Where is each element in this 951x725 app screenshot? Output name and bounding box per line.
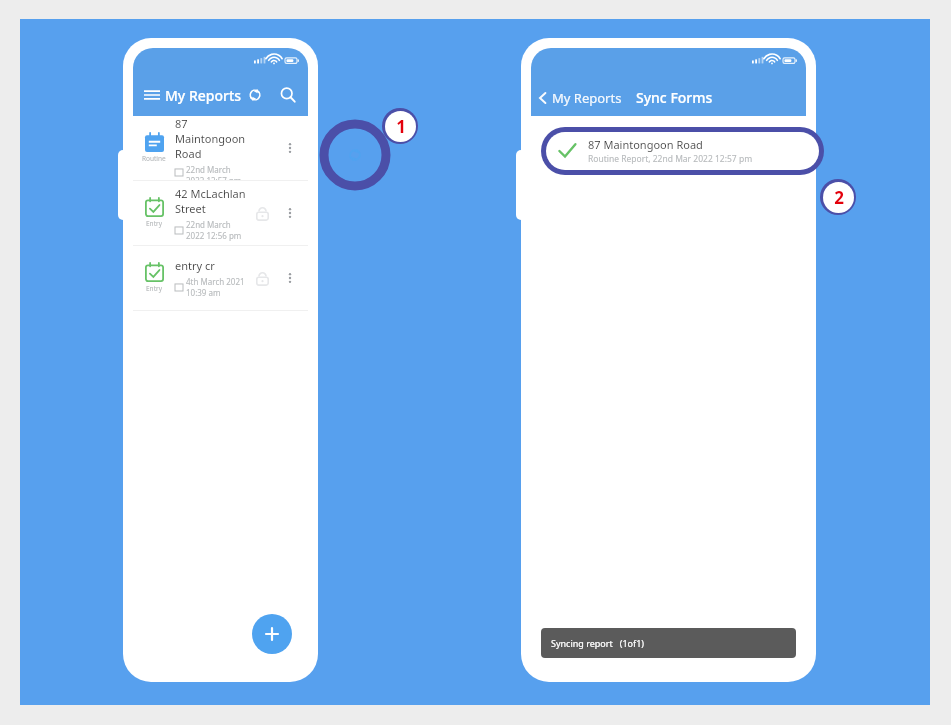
staticText: Sync Forms bbox=[636, 88, 713, 107]
button[interactable]: Locked bbox=[250, 266, 274, 290]
staticText: Routine Report, 22nd Mar 2022 12:57 pm bbox=[588, 153, 753, 165]
staticText: Entry bbox=[146, 219, 162, 228]
staticText: 22nd March 2022 12:56 pm bbox=[186, 219, 250, 241]
button[interactable]: Routine bbox=[133, 116, 308, 180]
button[interactable]: Entry bbox=[133, 181, 308, 245]
button[interactable]: 87 Maintongoon Road bbox=[531, 116, 806, 162]
staticText: 87 Maintongoon Road bbox=[588, 137, 703, 152]
staticText: 42 McLachlan Street bbox=[175, 186, 250, 216]
staticText: My Reports bbox=[552, 89, 622, 107]
button[interactable]: Entry bbox=[133, 246, 308, 310]
button[interactable]: 87 Maintongoon Road bbox=[546, 132, 819, 170]
button[interactable]: Locked bbox=[250, 201, 274, 225]
staticText: My Reports bbox=[165, 86, 242, 105]
button[interactable]: Sync bbox=[242, 82, 268, 108]
button[interactable]: Menu bbox=[139, 82, 165, 108]
staticText: entry cr bbox=[175, 258, 215, 273]
button[interactable]: Add report bbox=[252, 614, 292, 654]
button[interactable]: My Reports bbox=[537, 89, 622, 107]
staticText: Routine Report, 22nd Mar 2022 12:57 pm bbox=[577, 141, 742, 153]
staticText: 2 bbox=[834, 186, 844, 209]
button[interactable]: More options bbox=[280, 203, 300, 223]
staticText: Syncing report (1of1) bbox=[551, 637, 644, 649]
staticText: Routine bbox=[142, 154, 166, 163]
button[interactable]: More options bbox=[280, 138, 300, 158]
staticText: 22nd March 2022 12:57 pm bbox=[186, 164, 250, 180]
staticText: 87 Maintongoon Road bbox=[175, 116, 250, 161]
button[interactable]: Search bbox=[276, 82, 300, 108]
staticText: 87 Maintongoon Road bbox=[577, 125, 692, 140]
staticText: 1 bbox=[396, 115, 406, 138]
staticText: Entry bbox=[146, 284, 162, 293]
staticText: 4th March 2021 10:39 am bbox=[186, 276, 250, 298]
button[interactable]: More options bbox=[280, 268, 300, 288]
